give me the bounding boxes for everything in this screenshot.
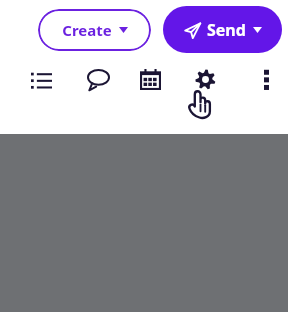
button[interactable]: Settings: [190, 64, 220, 94]
button[interactable]: More options: [252, 64, 280, 92]
button[interactable]: Send: [163, 6, 282, 53]
button[interactable]: Comments: [82, 64, 114, 96]
staticText: Create: [62, 20, 112, 40]
button[interactable]: Calendar: [135, 64, 165, 94]
button[interactable]: Create: [38, 9, 151, 51]
staticText: Send: [207, 19, 246, 41]
button[interactable]: List view: [26, 64, 56, 94]
